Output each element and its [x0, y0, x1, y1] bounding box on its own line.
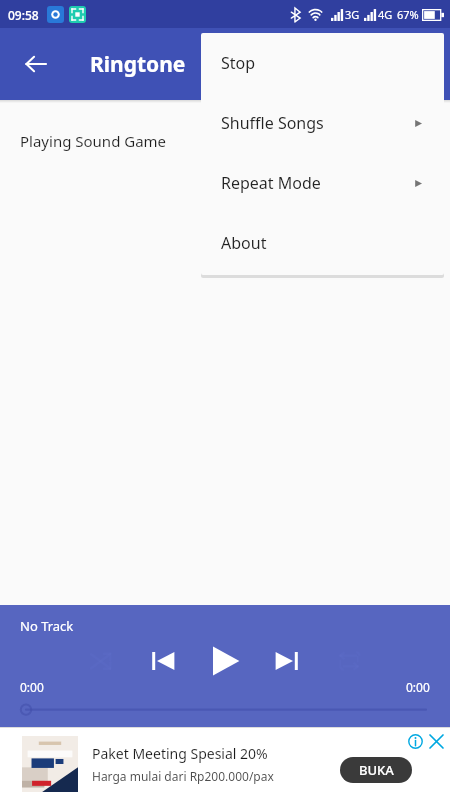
- button[interactable]: Previous: [141, 639, 185, 683]
- staticText: 09:58: [8, 7, 39, 23]
- staticText: Stop: [221, 52, 256, 74]
- staticText: 3G: [345, 7, 360, 22]
- staticText: Playing Sound Game: [20, 131, 167, 151]
- staticText: About: [221, 232, 267, 254]
- button[interactable]: Ad info: [406, 732, 424, 750]
- button[interactable]: Next: [265, 639, 309, 683]
- button[interactable]: Repeat Mode: [201, 153, 444, 213]
- button[interactable]: Play: [199, 637, 251, 685]
- staticText: No Track: [20, 617, 74, 635]
- button[interactable]: BUKA: [340, 757, 412, 783]
- button[interactable]: About: [201, 213, 444, 273]
- button[interactable]: Close ad: [426, 731, 446, 751]
- button[interactable]: Stop: [201, 33, 444, 93]
- staticText: Shuffle Songs: [221, 112, 324, 134]
- staticText: 0:00: [406, 679, 430, 695]
- staticText: BUKA: [359, 761, 394, 779]
- staticText: 67%: [397, 7, 419, 22]
- staticText: Harga mulai dari Rp200.000/pax: [92, 768, 274, 784]
- staticText: 4G: [378, 7, 393, 22]
- button[interactable]: Paket Meeting Spesial 20%: [0, 728, 450, 800]
- button[interactable]: Back: [12, 40, 60, 88]
- staticText: Paket Meeting Spesial 20%: [92, 744, 268, 763]
- button[interactable]: Shuffle Songs: [201, 93, 444, 153]
- staticText: 0:00: [20, 679, 44, 695]
- button[interactable]: [0, 699, 450, 727]
- staticText: Repeat Mode: [221, 172, 321, 194]
- staticText: Ringtone: [90, 50, 186, 79]
